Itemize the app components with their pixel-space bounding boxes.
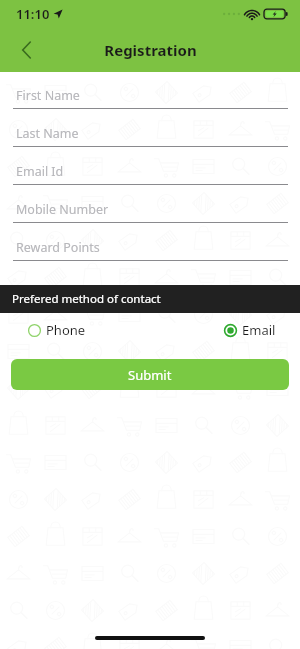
button[interactable]: Email <box>222 318 278 342</box>
button[interactable]: Submit <box>11 359 289 390</box>
staticText: First Name <box>16 87 80 104</box>
staticText: Registration <box>104 40 197 60</box>
staticText: Email Id <box>16 163 64 180</box>
staticText: 11:10 <box>16 5 50 23</box>
button[interactable]: Last Name <box>0 121 300 147</box>
staticText: Submit <box>128 366 172 384</box>
button[interactable]: Email Id <box>0 159 300 185</box>
button[interactable]: Phone <box>26 318 88 342</box>
button[interactable]: First Name <box>0 83 300 109</box>
staticText: Email <box>242 321 276 339</box>
button[interactable]: Reward Points <box>0 235 300 261</box>
staticText: Prefered method of contact <box>12 291 161 307</box>
button[interactable]: Back <box>8 32 44 68</box>
staticText: Mobile Number <box>16 201 109 218</box>
button[interactable]: Mobile Number <box>0 197 300 223</box>
staticText: Last Name <box>16 125 79 142</box>
staticText: Phone <box>46 321 86 339</box>
staticText: Reward Points <box>16 239 100 256</box>
